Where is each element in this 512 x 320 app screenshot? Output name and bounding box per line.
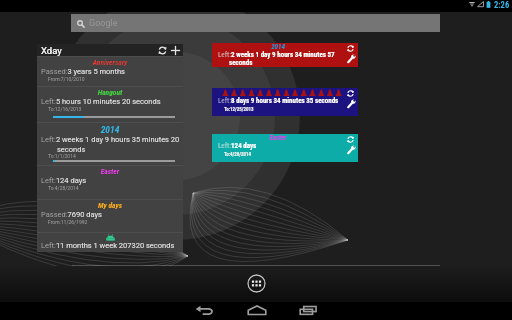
- button[interactable]: Apps: [247, 274, 266, 293]
- staticText: Left:11 months 1 week 207320 seconds: [41, 241, 175, 250]
- staticText: Passed:7690 days: [41, 210, 180, 219]
- button[interactable]: Left:8 days 9 hours 34 minutes 35 second…: [212, 88, 358, 116]
- button[interactable]: Refresh: [346, 44, 355, 53]
- staticText: To:4/28/2014: [48, 185, 79, 191]
- button[interactable]: Recents: [298, 304, 320, 318]
- staticText: To:4/28/2014: [224, 151, 252, 157]
- staticText: From:11/26/1992: [48, 219, 88, 225]
- button[interactable]: 2014: [37, 122, 183, 166]
- button[interactable]: Google: [71, 14, 440, 32]
- staticText: Left:8 days 9 hours 34 minutes 35 second…: [218, 97, 344, 105]
- button[interactable]: Home: [246, 304, 268, 318]
- staticText: Left:5 hours 10 minutes 20 seconds: [41, 97, 180, 106]
- button[interactable]: Back: [193, 304, 215, 318]
- button[interactable]: Refresh: [346, 135, 355, 144]
- staticText: My days: [37, 201, 183, 210]
- button[interactable]: Settings: [346, 145, 356, 155]
- button[interactable]: My days: [37, 199, 183, 232]
- button[interactable]: Easter: [37, 165, 183, 199]
- staticText: To:1/1/2014: [48, 153, 76, 159]
- staticText: 2014: [212, 43, 344, 51]
- button[interactable]: Refresh: [157, 45, 168, 56]
- staticText: Easter: [37, 167, 183, 176]
- staticText: Left:124 days: [41, 176, 180, 185]
- staticText: 2014: [37, 124, 183, 135]
- staticText: Left:124 days: [218, 142, 344, 150]
- button[interactable]: Settings: [346, 99, 356, 109]
- staticText: 2:26: [494, 0, 510, 10]
- staticText: Xday: [41, 45, 62, 56]
- staticText: Hangout: [37, 88, 183, 97]
- button[interactable]: 2014: [212, 43, 358, 67]
- staticText: To:12/25/2013: [224, 106, 254, 112]
- button[interactable]: Left:11 months 1 week 207320 seconds: [37, 232, 183, 251]
- staticText: Left:2 weeks 1 day 9 hours 34 minutes 57…: [218, 51, 344, 67]
- staticText: Anniversary: [37, 58, 183, 67]
- button[interactable]: Hangout: [37, 86, 183, 122]
- button[interactable]: Anniversary: [37, 56, 183, 86]
- staticText: Passed:3 years 5 months: [41, 67, 180, 76]
- button[interactable]: Settings: [346, 54, 356, 64]
- button[interactable]: Add: [170, 45, 181, 56]
- staticText: Google: [89, 18, 118, 29]
- button[interactable]: Refresh: [346, 89, 355, 98]
- staticText: Left:2 weeks 1 day 9 hours 35 minutes 20…: [41, 135, 180, 153]
- staticText: From:7/10/2010: [48, 76, 85, 82]
- button[interactable]: Easter: [212, 134, 358, 162]
- staticText: To:12/16/2013: [48, 106, 82, 112]
- staticText: Easter: [212, 134, 344, 142]
